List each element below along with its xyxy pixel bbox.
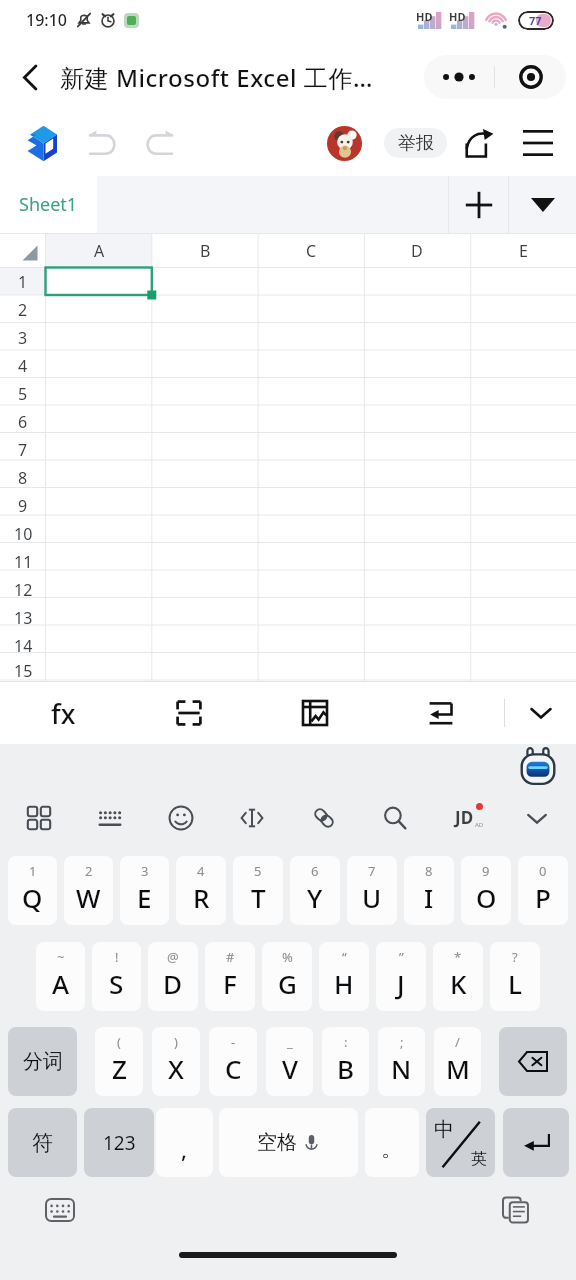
button[interactable]: A [46,233,152,268]
button[interactable]: ? [490,942,540,1011]
button[interactable]: @ [148,942,198,1011]
button[interactable]: Profile [327,126,362,161]
button[interactable]: 12 [0,576,46,604]
button[interactable]: * [433,942,483,1011]
button[interactable]: 13 [0,604,46,632]
button[interactable]: 符 [8,1108,77,1177]
button[interactable]: 4 [176,856,226,925]
button[interactable]: 8 [0,464,46,492]
button[interactable]: 3 [120,856,169,925]
button[interactable]: 6 [290,856,340,925]
button[interactable]: 2 [0,296,46,324]
button[interactable]: ( [95,1027,143,1096]
button[interactable]: Redo [138,121,182,165]
button[interactable]: 9 [461,856,511,925]
button[interactable]: 10 [0,520,46,548]
button[interactable]: ; [378,1027,425,1096]
staticText: T [251,880,266,915]
button[interactable]: grid [22,801,56,835]
button[interactable]: Functions [0,682,126,744]
button[interactable]: Backspace [499,1027,567,1096]
button[interactable]: Back [12,55,48,99]
button[interactable]: ) [152,1027,200,1096]
button[interactable]: “ [319,942,369,1011]
button[interactable]: B [152,233,258,268]
button[interactable]: 4 [0,352,46,380]
button[interactable]: AI assistant [516,746,560,790]
button[interactable]: 11 [0,548,46,576]
button[interactable]: 9 [0,492,46,520]
staticText: 19:10 [26,9,67,31]
button[interactable]: jd [449,801,483,835]
staticText: C [225,1051,242,1086]
button[interactable]: 中 [426,1108,495,1177]
staticText: B [200,240,211,262]
button[interactable]: ! [92,942,141,1011]
staticText: Sheet1 [19,192,78,217]
button[interactable]: down [520,801,554,835]
button[interactable]: % [262,942,312,1011]
button[interactable]: Collapse [505,682,576,744]
button[interactable]: 14 [0,632,46,660]
button[interactable]: smile [164,801,198,835]
button[interactable]: 6 [0,408,46,436]
button[interactable]: E [470,233,576,268]
staticText: F [223,966,237,1001]
button[interactable]: Sheet1 [0,176,97,233]
button[interactable]: New line [378,682,504,744]
staticText: R [193,880,210,915]
staticText: 5 [18,383,28,405]
button[interactable]: 2 [64,856,113,925]
button[interactable]: keys [93,801,127,835]
staticText: A [94,240,105,262]
button[interactable]: # [205,942,255,1011]
button[interactable]: More [424,55,494,99]
button[interactable]: 3 [0,324,46,352]
button[interactable]: 7 [0,436,46,464]
staticText: 空格 [257,1130,297,1155]
button[interactable]: Scan [126,682,252,744]
button[interactable]: D [364,233,470,268]
button[interactable]: Enter [503,1108,569,1177]
staticText: U [362,880,382,915]
button[interactable]: Add sheet [449,176,508,233]
button[interactable]: Insert chart [252,682,378,744]
button[interactable]: search [378,801,412,835]
button[interactable]: 123 [84,1108,154,1177]
button[interactable]: 5 [0,380,46,408]
button[interactable]: ~ [36,942,85,1011]
button[interactable]: 举报 [384,128,447,158]
button[interactable]: / [434,1027,481,1096]
button[interactable]: cursor [235,801,269,835]
button[interactable]: ” [376,942,426,1011]
button[interactable]: 7 [347,856,397,925]
button[interactable]: clip [307,801,341,835]
button[interactable]: 1 [0,268,46,296]
button[interactable]: 5 [233,856,283,925]
button[interactable]: App logo [19,121,63,165]
button[interactable]: 分词 [8,1027,77,1096]
button[interactable]: Undo [80,121,124,165]
button[interactable]: 15 [0,660,46,681]
button[interactable]: 0 [518,856,568,925]
button[interactable]: C [258,233,364,268]
button[interactable]: Recents [498,1192,534,1228]
button[interactable]: - [209,1027,257,1096]
button[interactable]: , [156,1108,213,1177]
staticText: D [411,240,423,262]
staticText: HD [416,9,433,24]
staticText: @ [167,948,179,966]
button[interactable]: Keyboard [42,1192,78,1228]
button[interactable]: Share [461,121,498,165]
button[interactable]: 1 [8,856,57,925]
button[interactable]: Close [495,55,566,99]
staticText: 英 [471,1149,487,1169]
button[interactable]: 。 [365,1108,419,1177]
button[interactable]: Menu [519,121,556,165]
button[interactable]: _ [266,1027,313,1096]
button[interactable]: : [322,1027,369,1096]
button[interactable]: 空格 [219,1108,358,1177]
button[interactable]: Sheet list [509,176,576,233]
staticText: 12 [14,579,33,601]
button[interactable]: 8 [404,856,454,925]
